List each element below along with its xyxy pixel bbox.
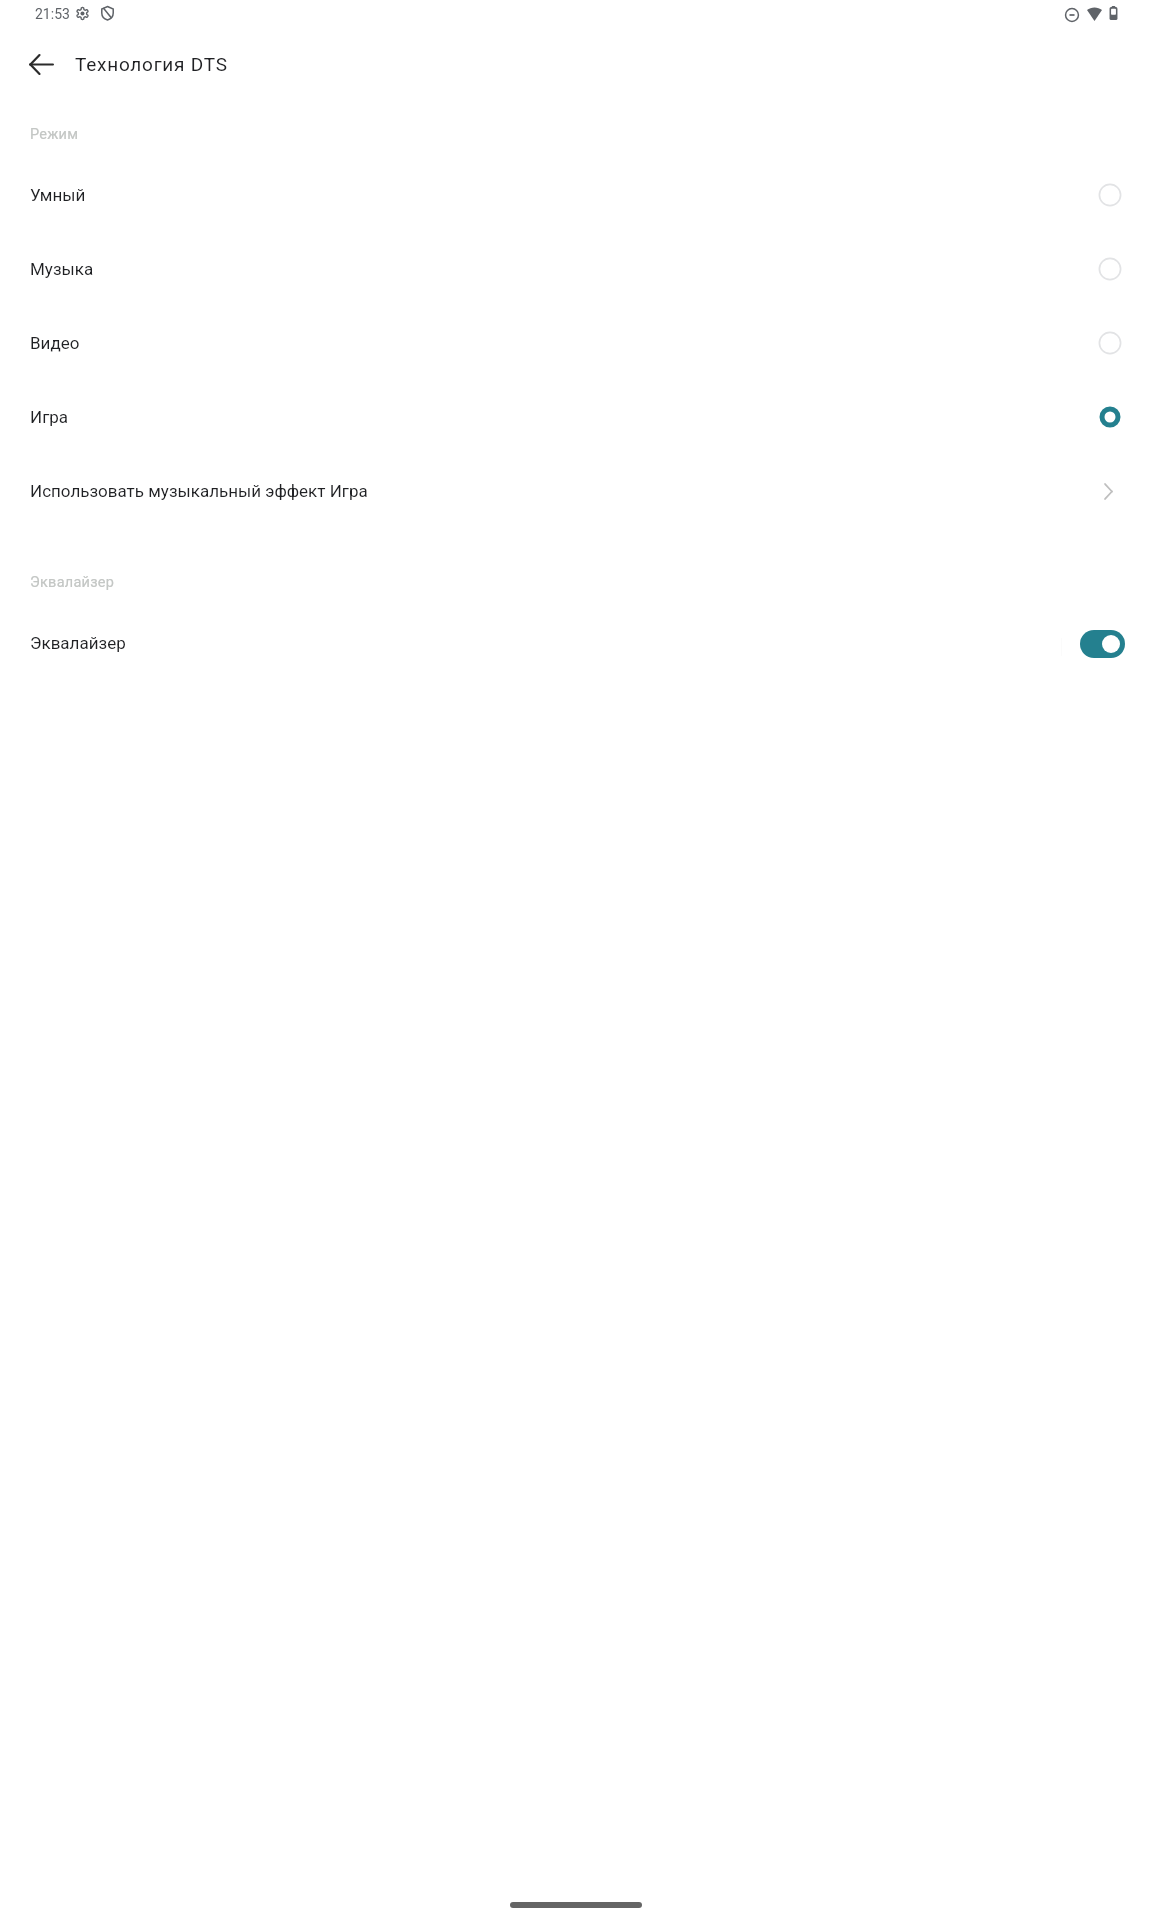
button[interactable]: Видео: [0, 306, 1152, 380]
button[interactable]: Использовать музыкальный эффект Игра: [0, 454, 1152, 528]
staticText: Музыка: [30, 259, 94, 279]
button[interactable]: Back: [16, 39, 66, 89]
button[interactable]: Умный: [0, 158, 1152, 232]
button[interactable]: Эквалайзер: [0, 606, 1152, 680]
staticText: Видео: [30, 333, 80, 353]
staticText: Эквалайзер: [30, 633, 126, 653]
staticText: Режим: [30, 126, 79, 143]
staticText: Умный: [30, 185, 86, 205]
staticText: Эквалайзер: [30, 574, 115, 591]
staticText: Использовать музыкальный эффект Игра: [30, 481, 368, 501]
staticText: Технология DTS: [75, 53, 228, 75]
staticText: Игра: [30, 407, 69, 427]
staticText: 21:53: [35, 6, 70, 22]
button[interactable]: Музыка: [0, 232, 1152, 306]
button[interactable]: Игра: [0, 380, 1152, 454]
